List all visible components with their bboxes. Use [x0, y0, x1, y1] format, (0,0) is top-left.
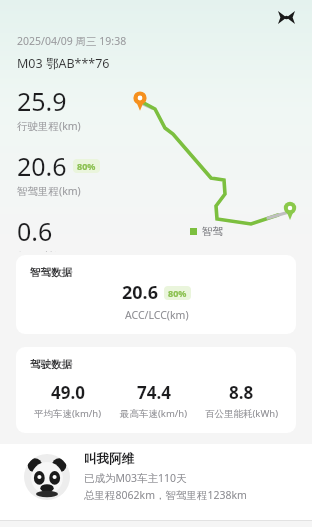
button[interactable]: 叫我阿维 [0, 444, 312, 521]
staticText: 74.4 [137, 381, 171, 404]
button[interactable]: Close [272, 3, 300, 31]
staticText: 平均车速(km/h) [34, 407, 102, 420]
staticText: 行驶里程(km) [17, 119, 81, 133]
button[interactable]: 驾驶数据 [16, 347, 296, 433]
staticText: 百公里能耗(kWh) [205, 407, 278, 420]
staticText: 49.0 [51, 381, 85, 404]
staticText: 已成为M03车主110天 [84, 471, 187, 485]
staticText: 智驾数据 [30, 266, 72, 279]
staticText: 总里程8062km，智驾里程1238km [84, 488, 247, 502]
staticText: 80% [77, 160, 96, 172]
staticText: ACC/LCC(km) [125, 308, 189, 322]
staticText: 2025/04/09 周三 19:38 [17, 34, 127, 48]
staticText: 80% [168, 287, 187, 299]
staticText: 行程时长(h) [17, 249, 72, 252]
staticText: 智驾里程(km) [17, 184, 81, 198]
staticText: 驾驶数据 [30, 358, 72, 371]
staticText: 25.9 [17, 84, 67, 118]
staticText: 最高车速(km/h) [120, 407, 188, 420]
staticText: 20.6 [122, 280, 158, 305]
staticText: 0.6 [17, 214, 53, 248]
staticText: 20.6 [17, 149, 67, 183]
staticText: 8.8 [229, 381, 254, 404]
button[interactable]: 智驾数据 [16, 255, 296, 334]
staticText: 叫我阿维 [84, 451, 134, 467]
staticText: M03 鄂AB***76 [17, 55, 110, 72]
staticText: 智驾 [202, 225, 223, 238]
